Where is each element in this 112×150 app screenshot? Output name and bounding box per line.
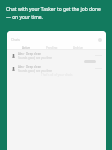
button[interactable]: Alex · Deep clean xyxy=(7,62,106,75)
staticText: Sounds good, see you then xyxy=(18,56,53,60)
staticText: Alex · Deep clean xyxy=(18,52,42,56)
button[interactable]: Active xyxy=(14,46,39,50)
staticText: Pending xyxy=(46,46,58,50)
staticText: Chat with your Tasker to get the job don… xyxy=(6,6,102,21)
button[interactable]: Pending xyxy=(39,46,65,50)
staticText: Chats xyxy=(11,37,20,42)
staticText: That's all of your chats xyxy=(41,73,73,77)
button[interactable]: Profile xyxy=(98,38,102,42)
staticText: Sounds good, see you then xyxy=(18,69,53,73)
staticText: Active xyxy=(22,46,31,50)
staticText: Alex · Deep clean xyxy=(18,65,42,69)
button[interactable]: Alex · Deep clean xyxy=(7,49,106,62)
button[interactable]: Archive xyxy=(65,46,91,50)
staticText: Archive xyxy=(73,46,84,50)
